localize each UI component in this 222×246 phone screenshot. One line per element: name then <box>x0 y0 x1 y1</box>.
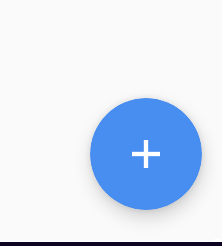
button[interactable]: Add <box>90 98 202 210</box>
